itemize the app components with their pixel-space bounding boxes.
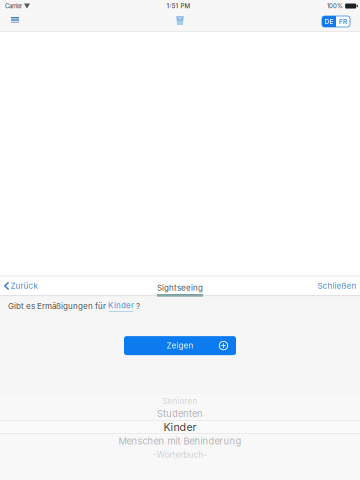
staticText: Kinder: [163, 420, 196, 433]
staticText: Zeigen: [166, 341, 193, 350]
staticText: DE: [324, 17, 333, 26]
button[interactable]: Zurück: [0, 276, 44, 295]
staticText: Schließen: [317, 281, 356, 291]
staticText: Menschen mit Behinderung: [118, 435, 241, 447]
button[interactable]: Kinder: [108, 300, 134, 312]
staticText: Sightseeing: [157, 283, 203, 293]
staticText: Studenten: [157, 408, 203, 419]
button[interactable]: Menu: [4, 12, 26, 31]
staticText: Senioren: [162, 396, 197, 406]
staticText: Gibt es Ermäßigungen für: [8, 301, 108, 311]
button[interactable]: Zeigen: [124, 336, 236, 355]
staticText: FR: [339, 17, 347, 26]
button[interactable]: Language DE FR: [322, 12, 350, 31]
staticText: 1:51 PM: [166, 2, 190, 10]
staticText: ?: [134, 301, 140, 311]
staticText: -Wörterbuch-: [152, 449, 207, 460]
staticText: Zurück: [11, 281, 38, 291]
button[interactable]: Delete: [169, 11, 191, 30]
staticText: Carrier: [5, 2, 22, 10]
staticText: 100%: [327, 2, 343, 10]
button[interactable]: Schließen: [316, 276, 358, 295]
staticText: Kinder: [108, 300, 134, 310]
